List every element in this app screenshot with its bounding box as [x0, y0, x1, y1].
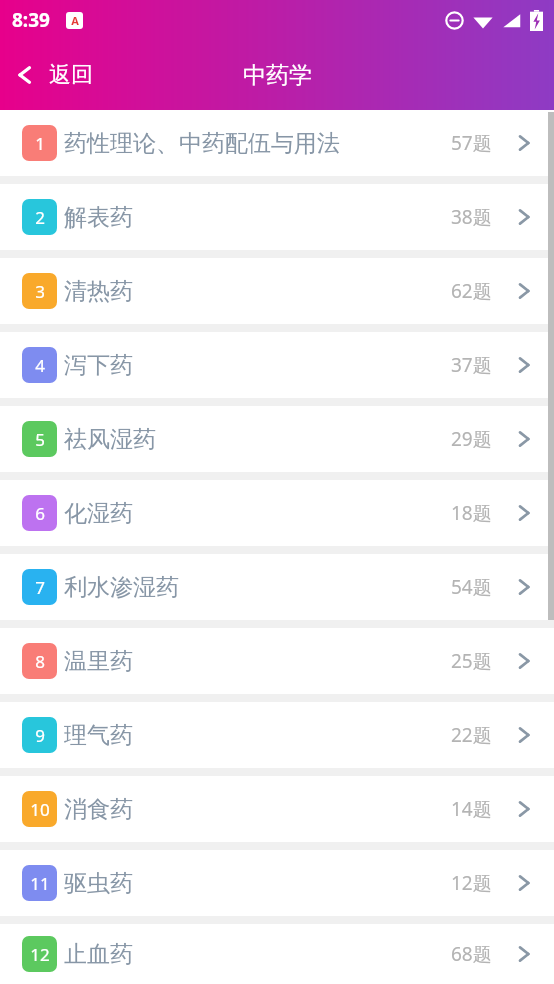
staticText: 5	[35, 428, 45, 451]
staticText: 中药学	[243, 61, 312, 90]
button[interactable]: 8	[0, 628, 554, 694]
staticText: 12	[30, 943, 50, 966]
staticText: 57题	[451, 130, 492, 156]
staticText: 消食药	[64, 795, 451, 824]
staticText: 3	[35, 280, 45, 303]
staticText: 4	[35, 354, 45, 377]
staticText: 返回	[49, 61, 93, 89]
button[interactable]: 4	[0, 332, 554, 398]
staticText: 祛风湿药	[64, 425, 451, 454]
button[interactable]: 7	[0, 554, 554, 620]
staticText: A	[71, 13, 79, 28]
staticText: 12题	[451, 870, 492, 896]
staticText: 驱虫药	[64, 869, 451, 898]
other: Signal	[502, 11, 521, 30]
staticText: 54题	[451, 574, 492, 600]
staticText: 化湿药	[64, 499, 451, 528]
staticText: 14题	[451, 796, 492, 822]
button[interactable]: 11	[0, 850, 554, 916]
staticText: 止血药	[64, 940, 451, 969]
other: Battery charging	[530, 10, 543, 31]
other: Do not disturb	[445, 11, 464, 30]
staticText: 利水渗湿药	[64, 573, 451, 602]
staticText: 10	[30, 798, 50, 821]
button[interactable]: 2	[0, 184, 554, 250]
button[interactable]: 3	[0, 258, 554, 324]
staticText: 37题	[451, 352, 492, 378]
staticText: 8	[35, 650, 45, 673]
staticText: 22题	[451, 722, 492, 748]
other: Wi-Fi	[473, 11, 493, 31]
staticText: 6	[35, 502, 45, 525]
button[interactable]: 9	[0, 702, 554, 768]
button[interactable]: 10	[0, 776, 554, 842]
staticText: 29题	[451, 426, 492, 452]
staticText: 解表药	[64, 203, 451, 232]
button[interactable]: 返回	[0, 40, 109, 110]
staticText: 药性理论、中药配伍与用法	[64, 129, 451, 158]
button[interactable]: 6	[0, 480, 554, 546]
button[interactable]: 5	[0, 406, 554, 472]
staticText: 18题	[451, 500, 492, 526]
button[interactable]: 1	[0, 110, 554, 176]
staticText: 理气药	[64, 721, 451, 750]
button[interactable]: 12	[0, 924, 554, 984]
staticText: 25题	[451, 648, 492, 674]
staticText: 9	[35, 724, 45, 747]
staticText: 温里药	[64, 647, 451, 676]
staticText: 11	[30, 872, 50, 895]
staticText: 1	[35, 132, 45, 155]
staticText: 2	[35, 206, 45, 229]
staticText: 68题	[451, 941, 492, 967]
staticText: 8:39	[12, 7, 50, 33]
staticText: 7	[35, 576, 45, 599]
staticText: 38题	[451, 204, 492, 230]
staticText: 泻下药	[64, 351, 451, 380]
staticText: 62题	[451, 278, 492, 304]
staticText: 清热药	[64, 277, 451, 306]
